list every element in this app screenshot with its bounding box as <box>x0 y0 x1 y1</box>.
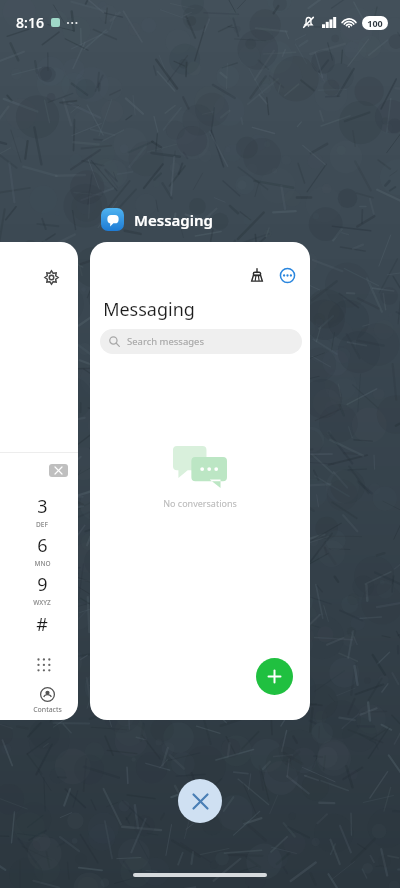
staticText: WXYZ <box>33 598 51 607</box>
staticText: 3 <box>37 494 48 519</box>
staticText: # <box>36 612 48 637</box>
button[interactable]: Settings <box>40 266 62 288</box>
button[interactable]: Dialpad <box>30 651 56 677</box>
staticText: Search messages <box>127 335 204 348</box>
button[interactable]: More options <box>276 264 298 286</box>
button[interactable]: Clean up <box>90 242 310 720</box>
staticText: No conversations <box>163 497 237 509</box>
staticText: 9 <box>37 572 48 597</box>
button[interactable]: Settings <box>0 242 78 720</box>
button[interactable]: Backspace <box>49 464 68 477</box>
staticText: Messaging <box>103 297 195 322</box>
button[interactable]: 6 <box>26 533 58 568</box>
staticText: 8:16 <box>16 13 44 32</box>
button[interactable]: 3 <box>26 494 58 529</box>
button[interactable]: Search messages <box>100 329 302 354</box>
staticText: Messaging <box>134 210 213 230</box>
staticText: 6 <box>37 533 48 558</box>
staticText: MNO <box>34 559 51 568</box>
button[interactable]: New conversation <box>256 658 293 695</box>
staticText: Contacts <box>33 705 62 715</box>
button[interactable]: Clean up <box>246 264 268 286</box>
button[interactable]: Close all <box>178 779 222 823</box>
staticText: DEF <box>36 520 48 529</box>
button[interactable]: 9 <box>26 572 58 607</box>
button[interactable]: # <box>26 612 58 637</box>
staticText: 100 <box>367 17 383 29</box>
button[interactable]: Contacts <box>33 687 62 715</box>
